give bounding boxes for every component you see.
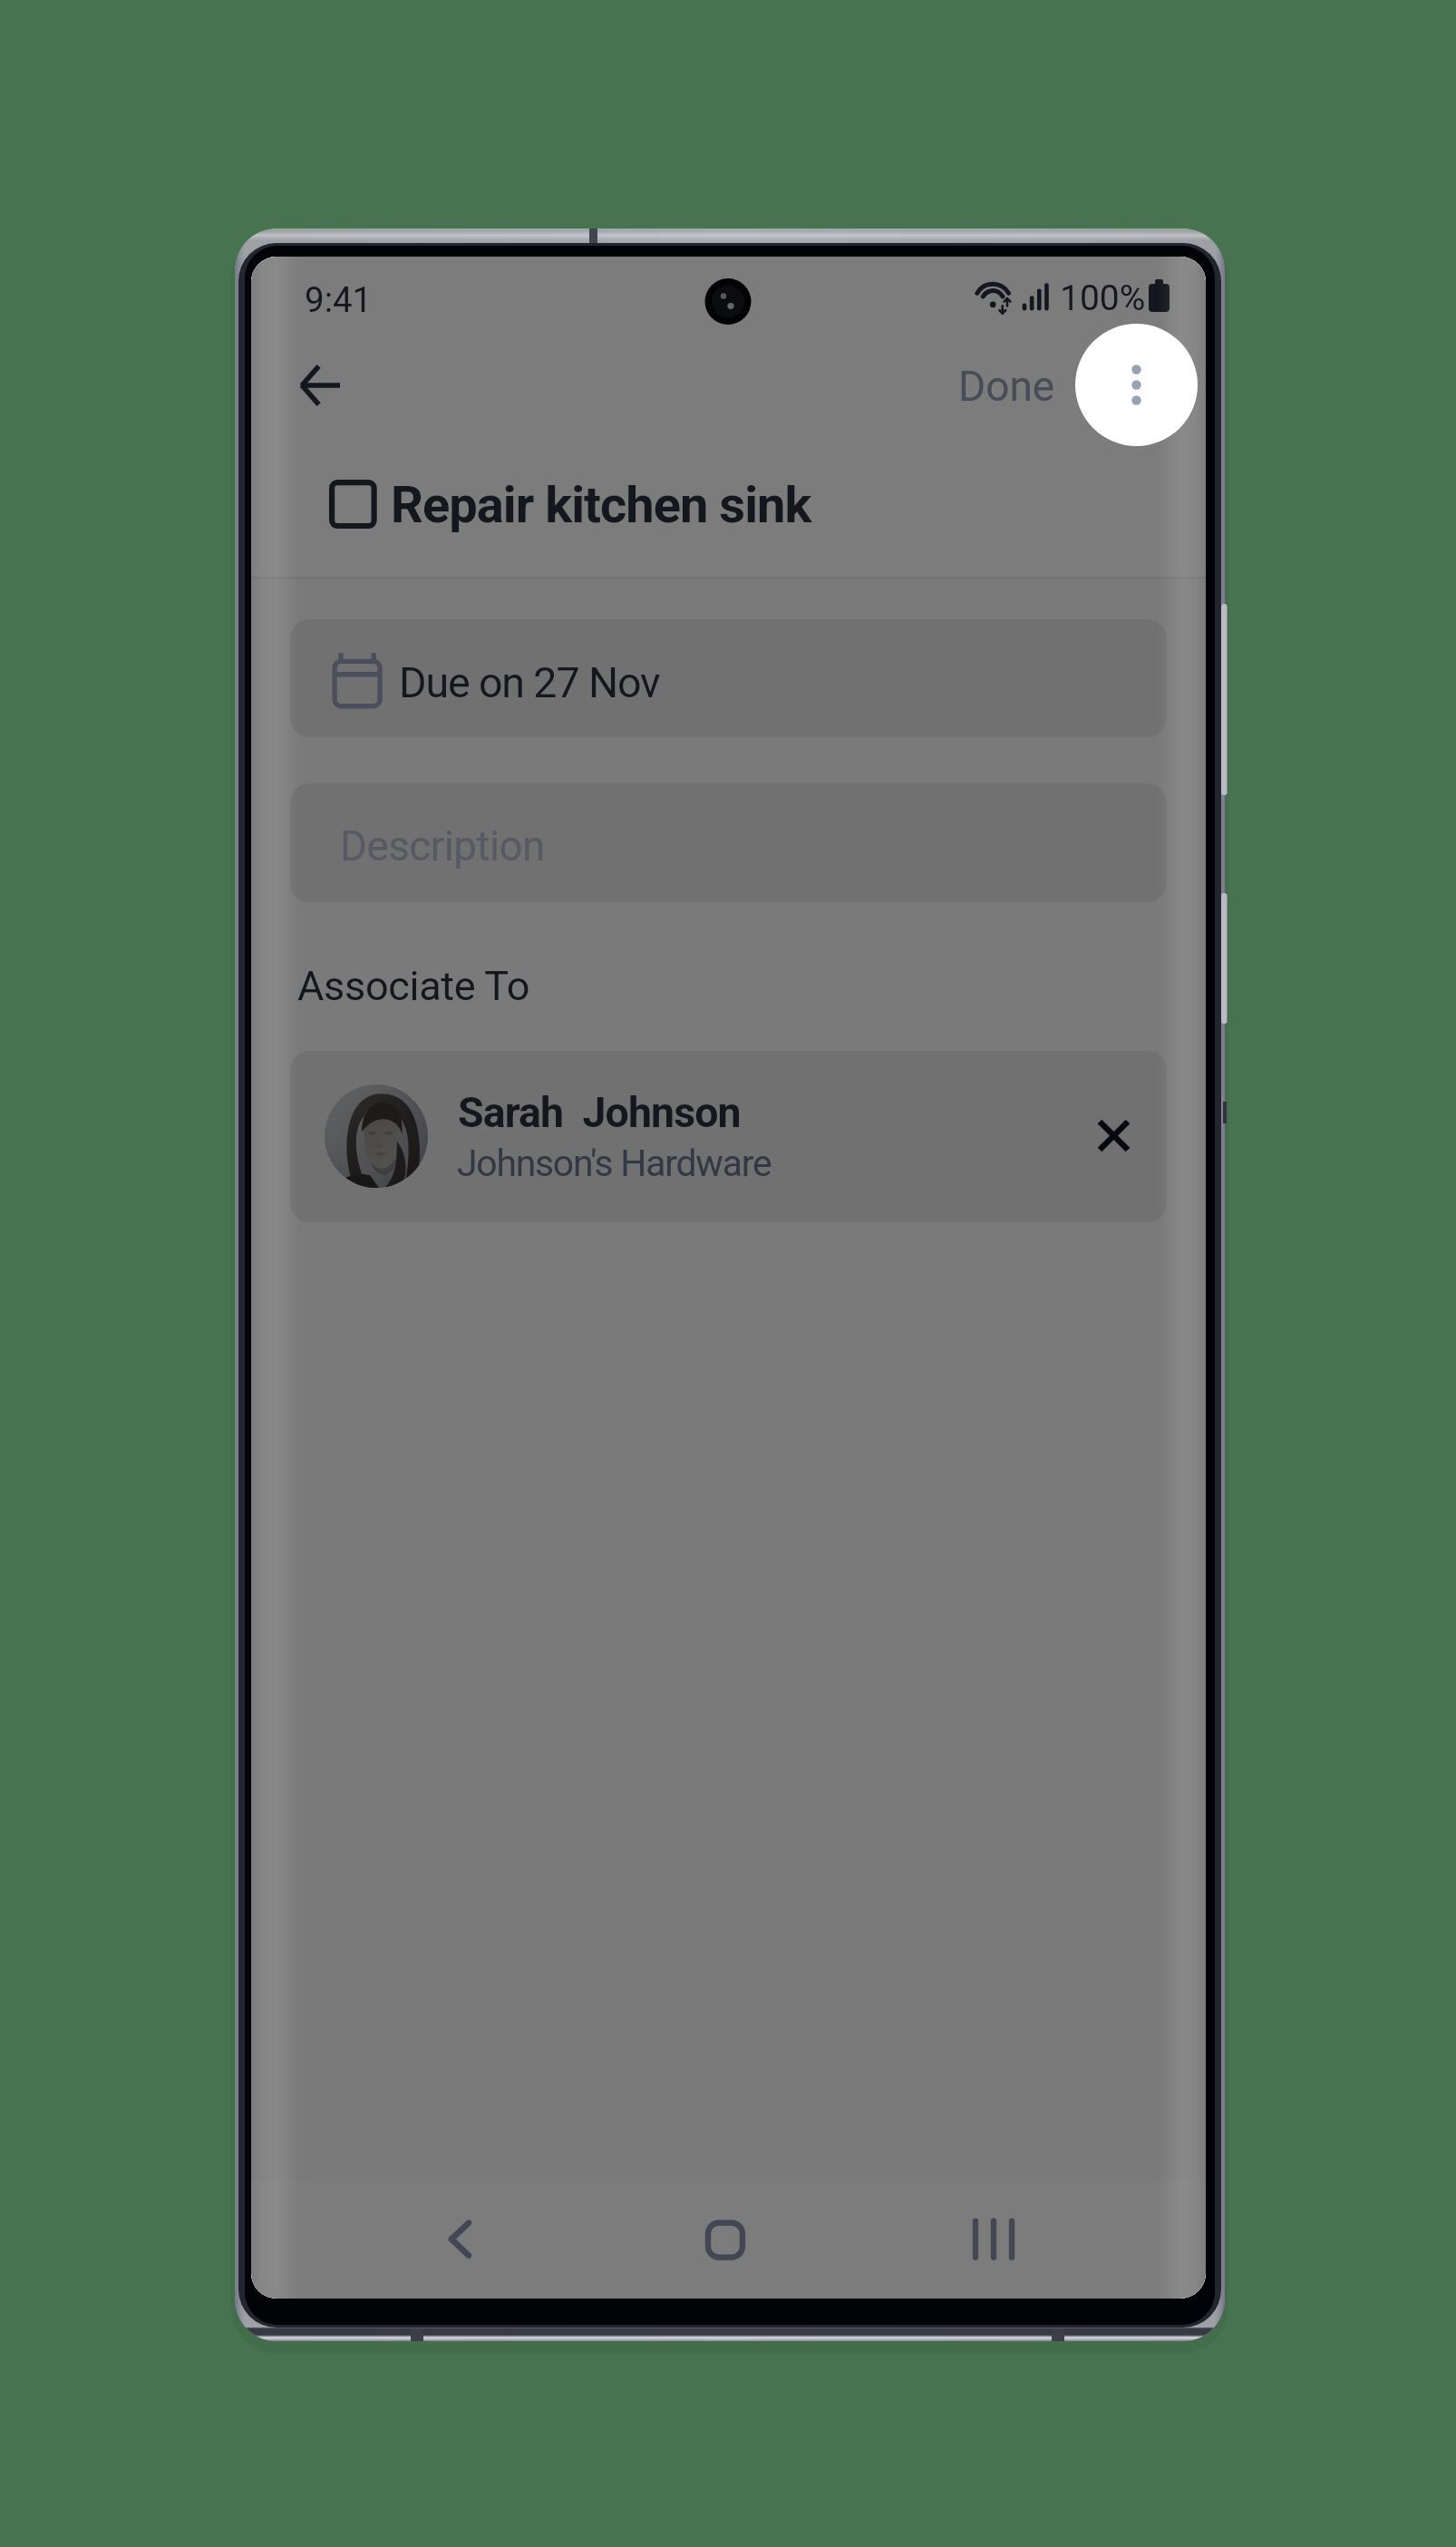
button[interactable]: Back — [280, 345, 360, 425]
button[interactable]: More options — [1096, 345, 1176, 425]
button[interactable]: Remove Sarah Johnson — [1075, 1097, 1152, 1174]
staticText: Associate To — [297, 962, 530, 1010]
staticText: Sarah Johnson — [458, 1088, 741, 1137]
button[interactable] — [290, 783, 1167, 902]
staticText: 9:41 — [305, 279, 373, 320]
staticText: Done — [958, 362, 1055, 411]
button[interactable] — [290, 619, 1167, 737]
staticText: 100% — [1060, 277, 1146, 319]
staticText: Repair kitchen sink — [391, 475, 811, 535]
staticText: Description — [340, 822, 545, 871]
button[interactable] — [299, 452, 934, 553]
button[interactable]: Done — [938, 347, 1074, 425]
button[interactable] — [290, 1051, 1167, 1222]
staticText: Due on 27 Nov — [399, 658, 660, 707]
staticText: Johnson's Hardware — [457, 1142, 772, 1185]
